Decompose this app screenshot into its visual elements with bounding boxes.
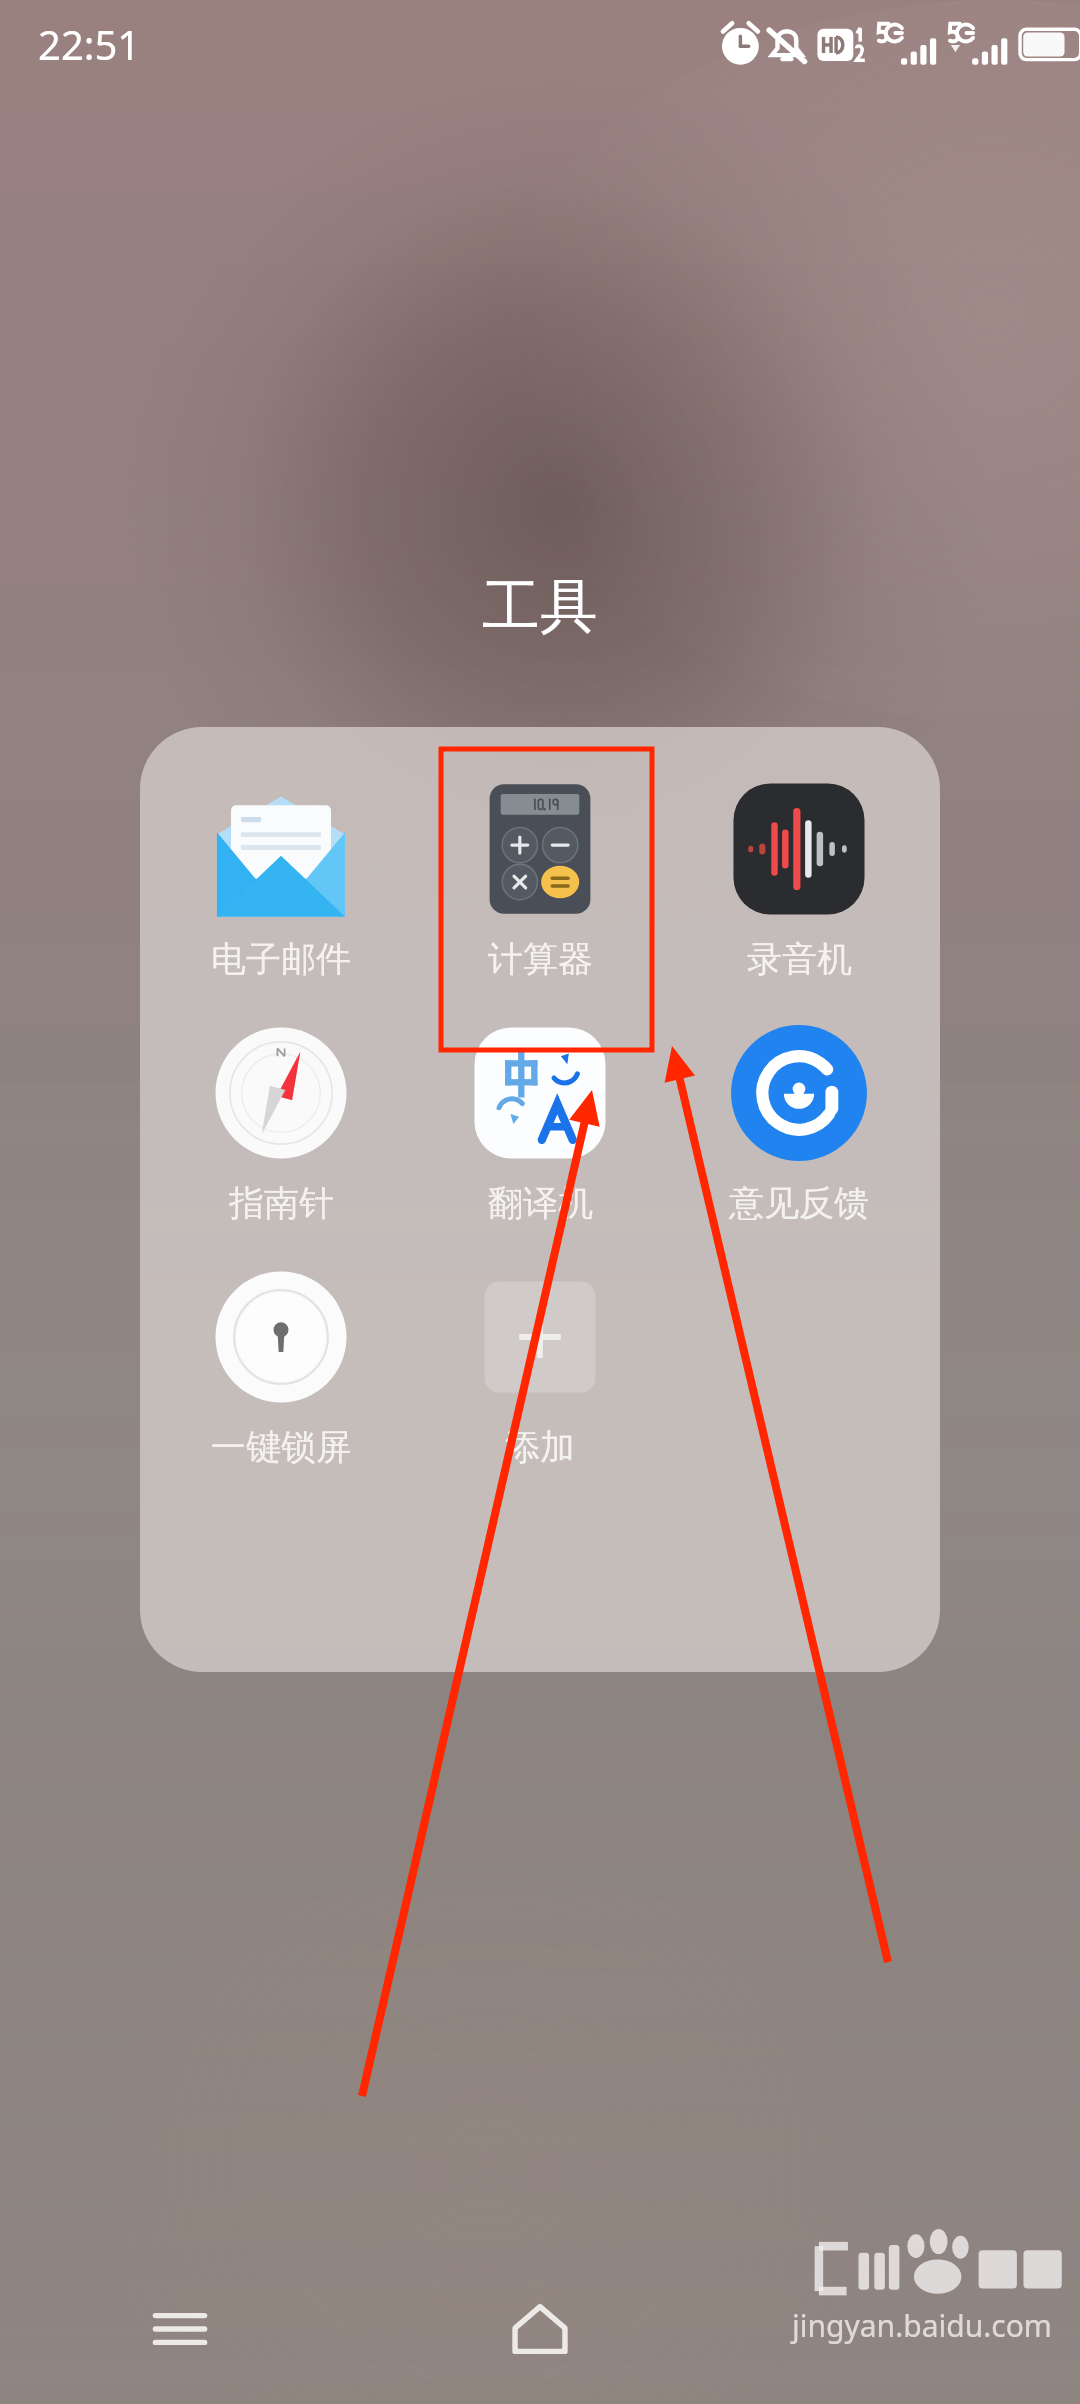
button[interactable]: 翻译机 (468, 1017, 612, 1229)
staticText: 22:51 (38, 17, 141, 71)
staticText: jingyan.baidu.com (792, 2305, 1052, 2346)
button[interactable]: 录音机 (727, 773, 871, 985)
button[interactable]: 一键锁屏 (209, 1261, 353, 1473)
staticText: 录音机 (747, 937, 852, 981)
staticText: 一键锁屏 (211, 1425, 351, 1469)
staticText: 翻译机 (488, 1181, 593, 1225)
staticText: 工具 (482, 570, 598, 643)
button[interactable]: 意见反馈 (727, 1017, 871, 1229)
staticText: 指南针 (229, 1181, 334, 1225)
button[interactable]: Home (360, 2254, 720, 2404)
button[interactable]: 电子邮件 (209, 773, 353, 985)
staticText: 添加 (505, 1425, 575, 1469)
staticText: 意见反馈 (729, 1181, 869, 1225)
button[interactable]: 指南针 (209, 1017, 353, 1229)
button[interactable]: 计算器 (468, 773, 612, 985)
button[interactable]: Recent apps (0, 2254, 360, 2404)
staticText: 计算器 (488, 937, 593, 981)
staticText: 电子邮件 (211, 937, 351, 981)
button[interactable]: Back (720, 2254, 1080, 2404)
button[interactable]: 添加 (468, 1261, 612, 1473)
